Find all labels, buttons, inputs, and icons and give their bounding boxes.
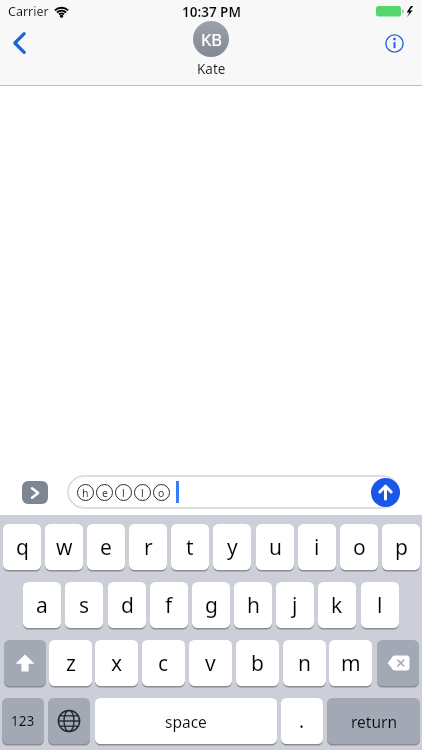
- staticText: d: [121, 591, 134, 620]
- staticText: return: [351, 711, 397, 732]
- button[interactable]: [371, 478, 400, 507]
- button[interactable]: p: [382, 524, 420, 570]
- button[interactable]: KB: [193, 21, 229, 78]
- button[interactable]: 123: [2, 698, 44, 744]
- button[interactable]: u: [256, 524, 294, 570]
- staticText: n: [298, 649, 311, 678]
- staticText: KB: [201, 28, 222, 50]
- button[interactable]: d: [108, 582, 146, 628]
- button[interactable]: v: [189, 640, 232, 686]
- staticText: w: [56, 533, 73, 562]
- button[interactable]: [377, 640, 419, 686]
- button[interactable]: [22, 481, 48, 504]
- staticText: .: [299, 708, 305, 734]
- staticText: space: [165, 711, 207, 732]
- button[interactable]: z: [49, 640, 92, 686]
- staticText: u: [269, 533, 282, 562]
- button[interactable]: b: [236, 640, 279, 686]
- staticText: l: [141, 486, 144, 500]
- staticText: v: [205, 649, 216, 678]
- staticText: i: [314, 533, 320, 562]
- staticText: b: [251, 649, 264, 678]
- staticText: e: [102, 486, 108, 500]
- button[interactable]: y: [213, 524, 251, 570]
- staticText: r: [144, 533, 153, 562]
- button[interactable]: x: [95, 640, 138, 686]
- staticText: e: [100, 533, 112, 562]
- staticText: o: [158, 486, 165, 500]
- button[interactable]: [6, 28, 32, 58]
- staticText: k: [331, 591, 343, 620]
- staticText: p: [395, 533, 408, 562]
- staticText: 123: [11, 712, 35, 730]
- staticText: x: [111, 649, 123, 678]
- button[interactable]: return: [327, 698, 420, 744]
- staticText: o: [353, 533, 366, 562]
- staticText: f: [165, 591, 173, 620]
- button[interactable]: n: [283, 640, 326, 686]
- staticText: g: [205, 591, 218, 620]
- staticText: s: [79, 591, 90, 620]
- staticText: t: [186, 533, 194, 562]
- button[interactable]: f: [150, 582, 188, 628]
- staticText: h: [247, 591, 260, 620]
- button[interactable]: t: [171, 524, 209, 570]
- button[interactable]: g: [192, 582, 230, 628]
- staticText: l: [122, 486, 125, 500]
- button[interactable]: i: [298, 524, 336, 570]
- button[interactable]: c: [142, 640, 185, 686]
- button[interactable]: q: [3, 524, 41, 570]
- staticText: h: [82, 486, 89, 500]
- staticText: l: [377, 591, 383, 620]
- button[interactable]: [379, 28, 409, 58]
- button[interactable]: .: [281, 698, 323, 744]
- button[interactable]: r: [129, 524, 167, 570]
- button[interactable]: [4, 640, 46, 686]
- button[interactable]: [48, 698, 90, 744]
- staticText: m: [341, 649, 361, 678]
- staticText: Kate: [197, 60, 226, 78]
- staticText: j: [292, 591, 298, 620]
- button[interactable]: s: [65, 582, 103, 628]
- staticText: 10:37 PM: [182, 3, 241, 21]
- button[interactable]: l: [361, 582, 399, 628]
- staticText: c: [158, 649, 169, 678]
- button[interactable]: m: [329, 640, 372, 686]
- staticText: z: [66, 649, 76, 678]
- button[interactable]: h: [234, 582, 272, 628]
- button[interactable]: k: [318, 582, 356, 628]
- button[interactable]: j: [276, 582, 314, 628]
- button[interactable]: w: [45, 524, 83, 570]
- staticText: y: [227, 533, 238, 562]
- button[interactable]: o: [340, 524, 378, 570]
- staticText: Carrier: [8, 3, 49, 20]
- button[interactable]: a: [23, 582, 61, 628]
- button[interactable]: e: [87, 524, 125, 570]
- staticText: q: [16, 533, 29, 562]
- button[interactable]: space: [95, 698, 277, 744]
- staticText: a: [36, 591, 48, 620]
